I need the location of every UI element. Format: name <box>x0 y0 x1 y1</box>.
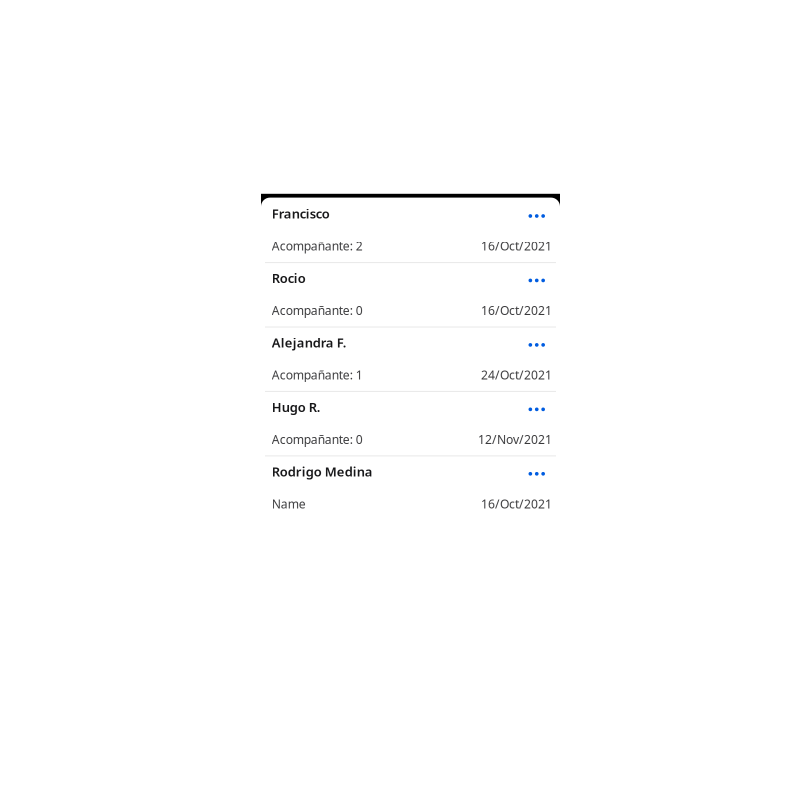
staticText: 12/Nov/2021 <box>478 431 552 447</box>
staticText: Alejandra F. <box>272 334 347 351</box>
staticText: 16/Oct/2021 <box>481 302 552 319</box>
staticText: 16/Oct/2021 <box>481 495 552 512</box>
button[interactable]: More options for Rodrigo Medina <box>518 462 560 481</box>
staticText: 16/Oct/2021 <box>481 238 552 254</box>
button[interactable]: Alejandra F. <box>261 326 560 391</box>
button[interactable]: Rodrigo Medina <box>261 455 560 520</box>
staticText: Name <box>272 495 306 512</box>
staticText: Acompañante: 0 <box>272 302 363 319</box>
staticText: Francisco <box>272 205 330 222</box>
button[interactable]: More options for Hugo R. <box>518 398 560 416</box>
staticText: Rocio <box>272 269 306 287</box>
button[interactable]: Francisco <box>261 198 560 262</box>
button[interactable]: More options for Rocio <box>518 269 560 287</box>
staticText: Acompañante: 1 <box>272 366 363 383</box>
button[interactable]: More options for Alejandra F. <box>518 333 560 352</box>
button[interactable]: More options for Francisco <box>518 204 560 223</box>
staticText: Acompañante: 2 <box>272 238 363 254</box>
button[interactable]: Hugo R. <box>261 391 560 455</box>
staticText: Rodrigo Medina <box>272 463 373 480</box>
staticText: Hugo R. <box>272 398 321 416</box>
button[interactable]: Rocio <box>261 262 560 327</box>
staticText: 24/Oct/2021 <box>481 366 552 383</box>
staticText: Acompañante: 0 <box>272 431 363 447</box>
